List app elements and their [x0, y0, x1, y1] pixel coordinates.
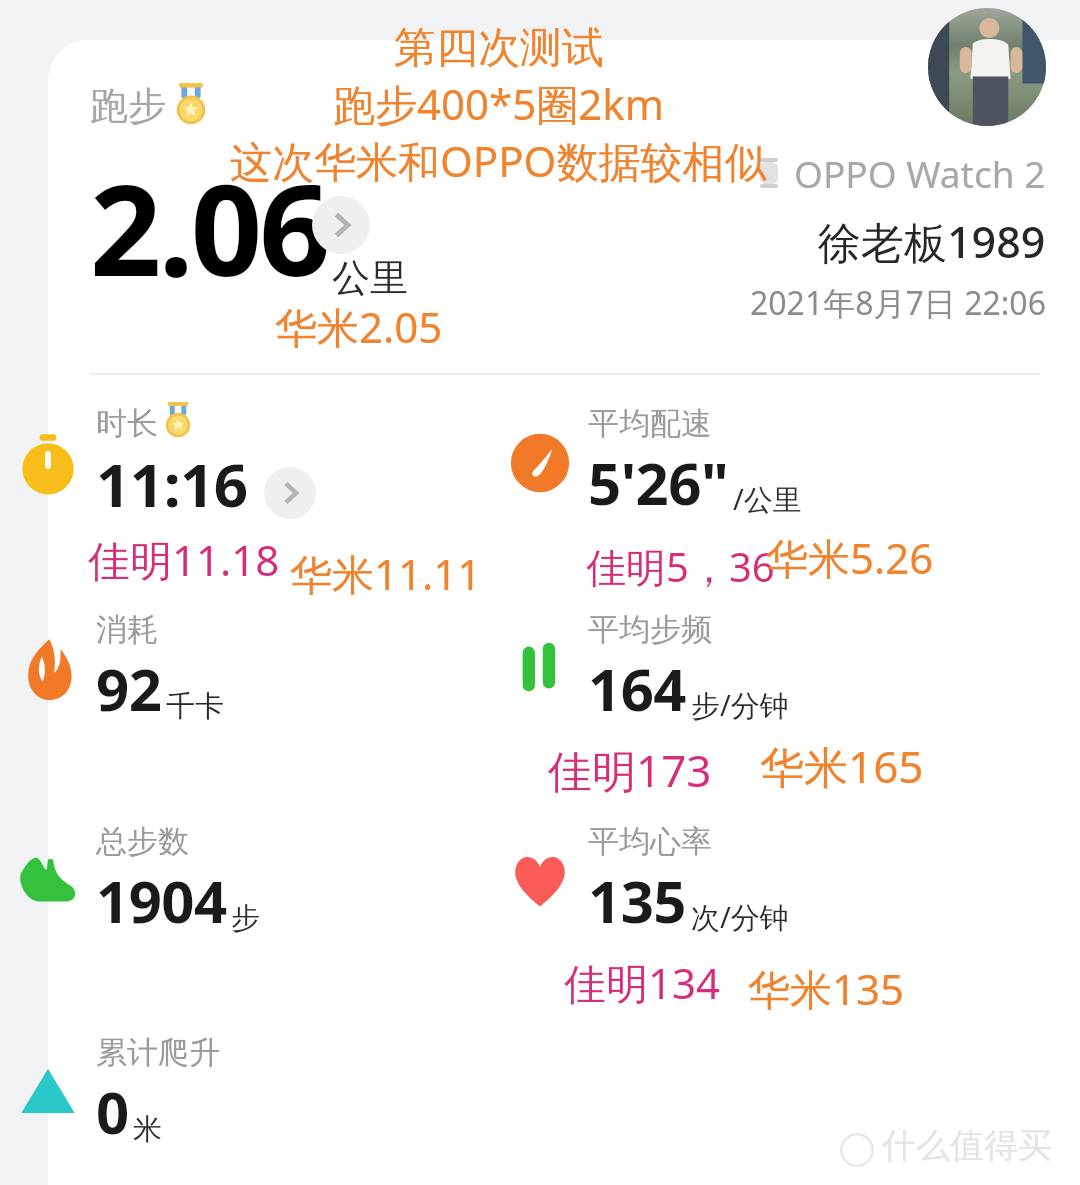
staticText: 佳明5，36: [586, 539, 775, 594]
button[interactable]: 2.06: [90, 142, 466, 312]
staticText: 步/分钟: [691, 685, 789, 725]
staticText: 第四次测试: [394, 22, 604, 75]
staticText: 累计爬升: [96, 1033, 220, 1072]
button[interactable]: 消耗: [0, 610, 492, 728]
button[interactable]: 累计爬升: [0, 1033, 492, 1151]
staticText: 华米5.26: [766, 529, 934, 586]
button[interactable]: View distance details: [312, 196, 370, 254]
staticText: 2.06: [90, 142, 328, 312]
staticText: 135: [588, 861, 687, 940]
button[interactable]: OPPO Watch 2: [754, 148, 1046, 198]
staticText: 华米165: [760, 736, 924, 796]
staticText: 5'26": [588, 443, 729, 522]
staticText: 次/分钟: [691, 897, 789, 937]
button[interactable]: 总步数: [0, 822, 492, 940]
staticText: 徐老板1989: [818, 212, 1046, 271]
staticText: 时长: [96, 404, 158, 443]
button[interactable]: 平均步频: [492, 610, 1032, 728]
button[interactable]: View details: [264, 467, 316, 519]
staticText: 公里: [332, 254, 408, 302]
staticText: 平均心率: [588, 822, 712, 861]
staticText: 千卡: [166, 688, 224, 725]
staticText: 步: [231, 900, 260, 937]
staticText: OPPO Watch 2: [794, 148, 1046, 198]
staticText: 跑步: [90, 82, 166, 130]
staticText: 华米135: [748, 960, 905, 1017]
staticText: 0: [96, 1072, 129, 1151]
button[interactable]: 平均配速: [492, 404, 1032, 522]
staticText: 这次华米和OPPO数据较相似: [230, 132, 767, 189]
staticText: 平均配速: [588, 404, 712, 443]
staticText: 佳明134: [564, 954, 721, 1011]
staticText: 1904: [96, 861, 227, 940]
staticText: 92: [96, 649, 162, 728]
staticText: 华米2.05: [275, 298, 443, 355]
staticText: 佳明173: [548, 740, 712, 800]
staticText: 11:16: [96, 443, 248, 525]
staticText: 164: [588, 649, 687, 728]
staticText: 华米11.11: [290, 545, 482, 602]
button[interactable]: 跑步: [90, 82, 208, 130]
button[interactable]: Profile photo: [928, 8, 1046, 126]
staticText: 2021年8月7日 22:06: [750, 281, 1046, 325]
staticText: 平均步频: [588, 610, 712, 649]
staticText: 总步数: [96, 822, 189, 861]
staticText: /公里: [733, 479, 802, 519]
staticText: 佳明11.18: [88, 531, 280, 588]
button[interactable]: 平均心率: [492, 822, 1032, 940]
staticText: 什么值得买: [882, 1124, 1052, 1167]
staticText: 消耗: [96, 610, 158, 649]
staticText: 跑步400*5圈2km: [333, 75, 664, 132]
staticText: 米: [133, 1111, 162, 1148]
button[interactable]: 时长: [0, 404, 492, 525]
